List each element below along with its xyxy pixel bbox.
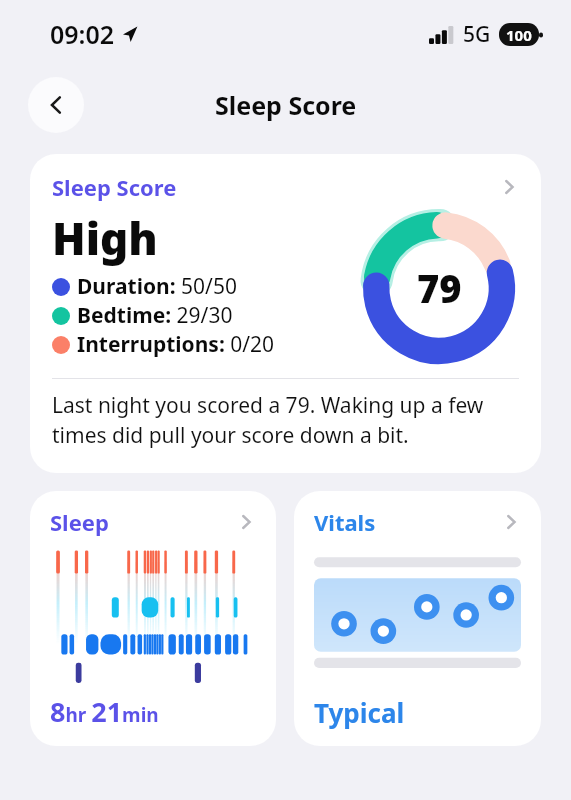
staticText: 100 xyxy=(506,25,532,45)
button[interactable]: Back xyxy=(28,77,84,133)
button[interactable]: Vitals xyxy=(294,491,541,746)
staticText: Interruptions: 0/20 xyxy=(77,330,275,359)
button[interactable]: Sleep Score xyxy=(52,172,519,202)
button[interactable]: Sleep Score xyxy=(30,154,541,473)
staticText: Sleep Score xyxy=(52,172,177,202)
button[interactable]: Sleep xyxy=(50,507,256,537)
staticText: Duration: 50/50 xyxy=(77,272,237,301)
staticText: Typical xyxy=(314,695,405,730)
staticText: Bedtime: 29/30 xyxy=(77,301,233,330)
staticText: 5G xyxy=(463,20,491,49)
staticText: Sleep Score xyxy=(215,88,357,122)
staticText: 79 xyxy=(417,262,462,314)
button[interactable]: Vitals xyxy=(314,507,521,537)
button[interactable]: Sleep xyxy=(30,491,276,746)
staticText: High xyxy=(52,208,158,268)
staticText: Last night you scored a 79. Waking up a … xyxy=(52,391,519,449)
staticText: Sleep xyxy=(50,507,109,537)
staticText: 09:02 xyxy=(50,17,115,51)
staticText: Vitals xyxy=(314,507,376,537)
staticText: 8hr 21min xyxy=(50,693,159,730)
